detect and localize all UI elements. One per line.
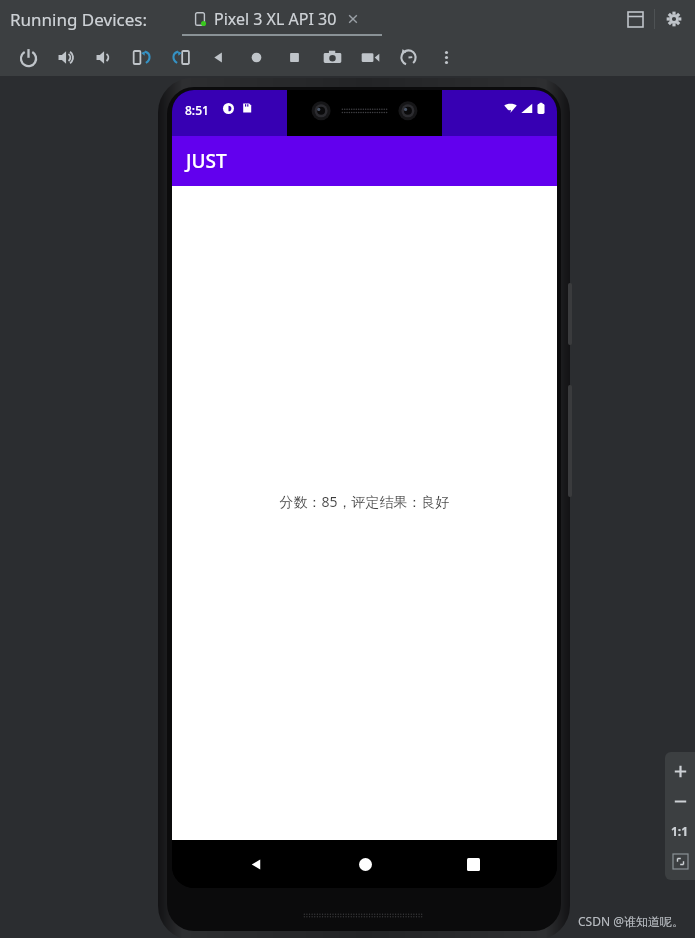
button[interactable]: Recent apps [449,840,497,888]
button[interactable]: Home [341,840,389,888]
staticText: 8:51 [185,102,209,118]
button[interactable]: Back [232,840,280,888]
button[interactable]: Close tab [345,11,361,27]
button[interactable]: Overview [275,38,313,76]
button[interactable]: Volume down [85,38,123,76]
button[interactable]: Pixel 3 XL API 30 [182,0,369,38]
staticText: 分数：85，评定结果：良好 [279,492,450,511]
staticText: CSDN @谁知道呢。 [578,913,684,929]
button[interactable]: Layout options [622,6,648,32]
button[interactable]: Zoom in [665,756,695,786]
button[interactable]: Back [199,38,237,76]
button[interactable]: Snapshots [389,38,427,76]
button[interactable]: Volume up [47,38,85,76]
button[interactable]: Zoom to actual size [665,816,695,846]
staticText: Pixel 3 XL API 30 [214,8,337,30]
button[interactable]: Screenshot [313,38,351,76]
button[interactable]: Zoom to fit [665,846,695,876]
button[interactable]: Settings [661,6,687,32]
staticText: Running Devices: [10,8,147,31]
button[interactable]: JUST [172,136,557,186]
button[interactable]: Home [237,38,275,76]
button[interactable]: Rotate left [123,38,161,76]
button[interactable]: More [427,38,465,76]
button[interactable]: Zoom out [665,786,695,816]
button[interactable]: Record screen [351,38,389,76]
button[interactable]: Rotate right [161,38,199,76]
staticText: 1:1 [671,823,689,839]
button[interactable]: Power [9,38,47,76]
staticText: JUST [186,148,227,174]
